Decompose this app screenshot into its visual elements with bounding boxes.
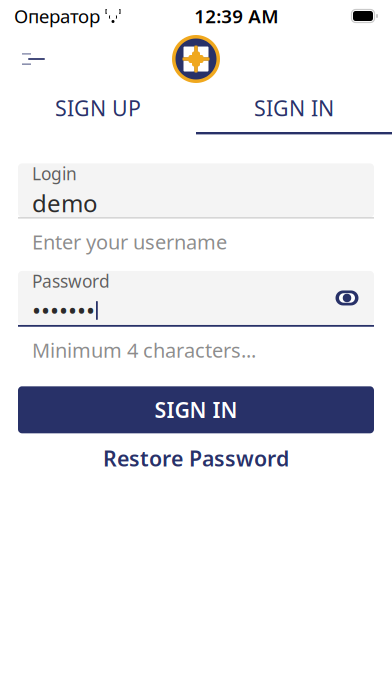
- staticText: Restore Password: [103, 444, 289, 472]
- staticText: Enter your username: [32, 228, 227, 255]
- button[interactable]: SIGN IN: [18, 386, 374, 433]
- staticText: SIGN IN: [154, 396, 237, 424]
- staticText: Password: [32, 269, 110, 292]
- staticText: •••••••: [32, 294, 95, 326]
- staticText: SIGN UP: [55, 94, 141, 122]
- staticText: 12:39 AM: [194, 4, 278, 28]
- button[interactable]: SIGN IN: [196, 91, 392, 125]
- button[interactable]: Back: [12, 41, 54, 77]
- staticText: Оператор: [14, 4, 100, 28]
- button[interactable]: SIGN UP: [0, 91, 196, 125]
- staticText: Login: [32, 162, 77, 185]
- staticText: Minimum 4 characters...: [32, 337, 256, 363]
- button[interactable]: Show password: [334, 285, 360, 311]
- button[interactable]: Restore Password: [18, 443, 374, 473]
- staticText: SIGN IN: [254, 94, 334, 122]
- staticText: demo: [32, 187, 98, 219]
